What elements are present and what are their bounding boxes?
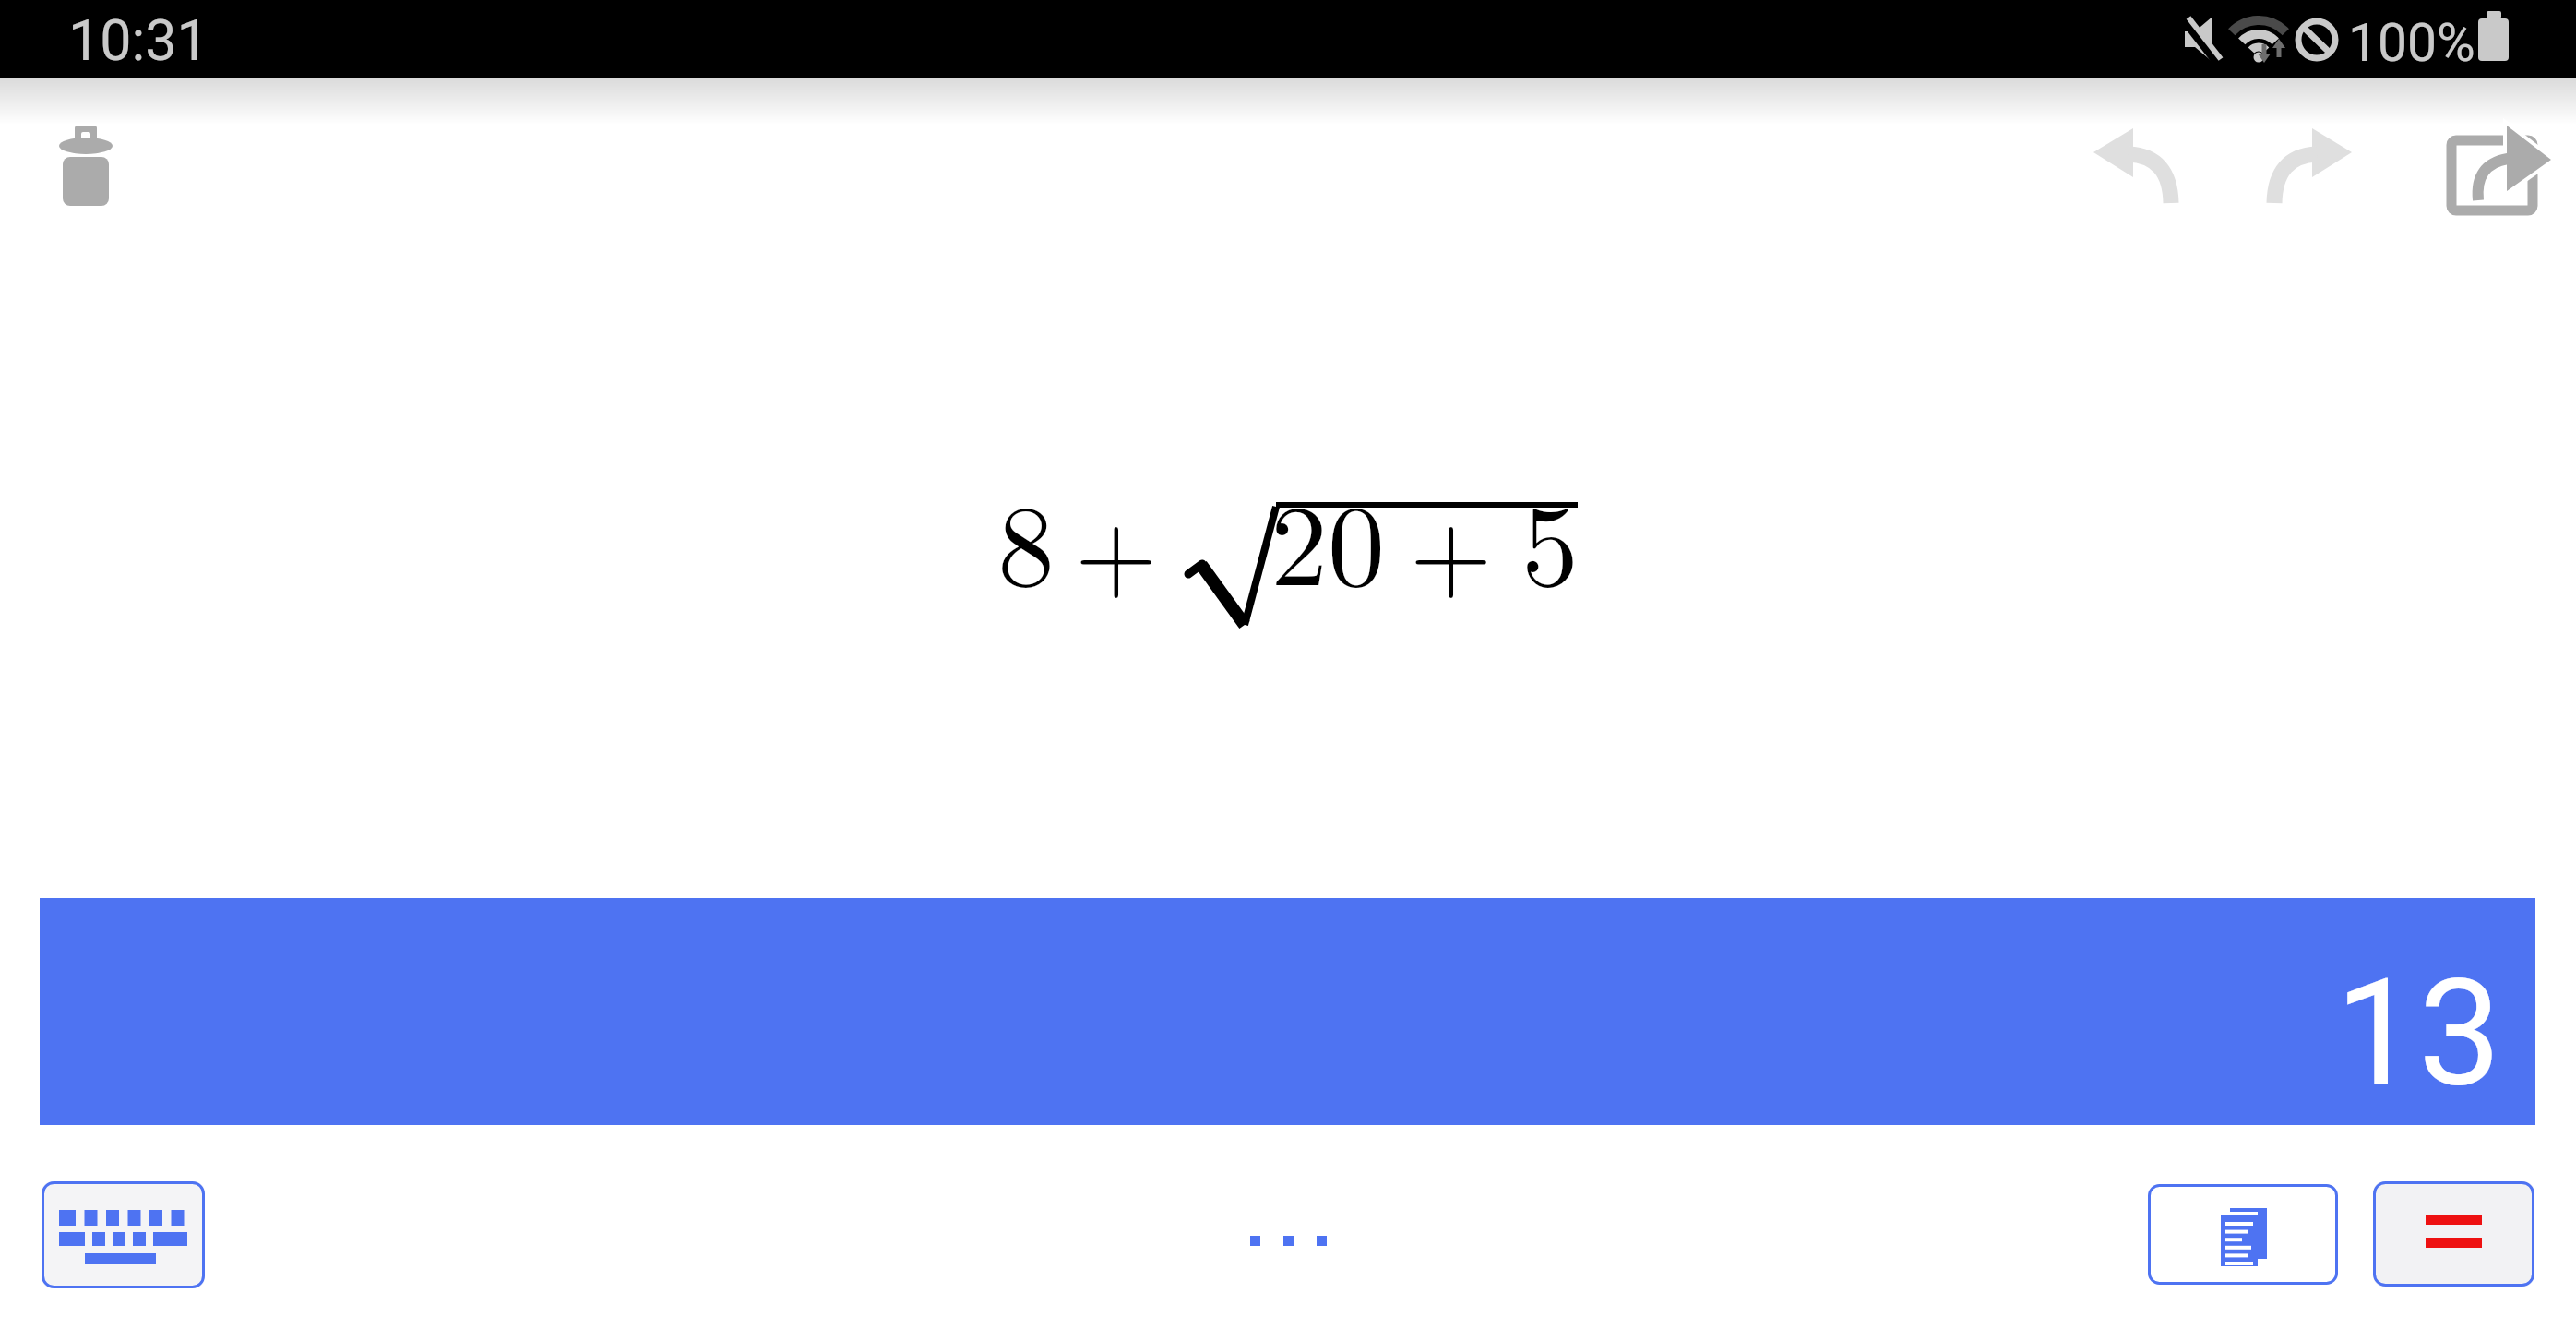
button[interactable]: 13	[40, 898, 2535, 1125]
staticText: +	[1410, 469, 1493, 619]
button[interactable]	[2253, 110, 2370, 223]
staticText: 10:31	[68, 7, 209, 73]
button[interactable]	[1234, 1219, 1342, 1263]
staticText: 5	[1521, 456, 1580, 618]
button[interactable]	[2373, 1181, 2534, 1287]
staticText: +	[1075, 469, 1158, 619]
button[interactable]	[2075, 110, 2192, 223]
staticText: 100%	[2348, 12, 2475, 74]
staticText: 20	[1270, 456, 1386, 618]
button[interactable]	[2436, 105, 2565, 229]
staticText: 13	[2335, 947, 2501, 1120]
button[interactable]	[37, 102, 138, 231]
button[interactable]	[42, 1181, 205, 1288]
button[interactable]	[2148, 1184, 2338, 1285]
staticText: 8	[997, 456, 1055, 618]
